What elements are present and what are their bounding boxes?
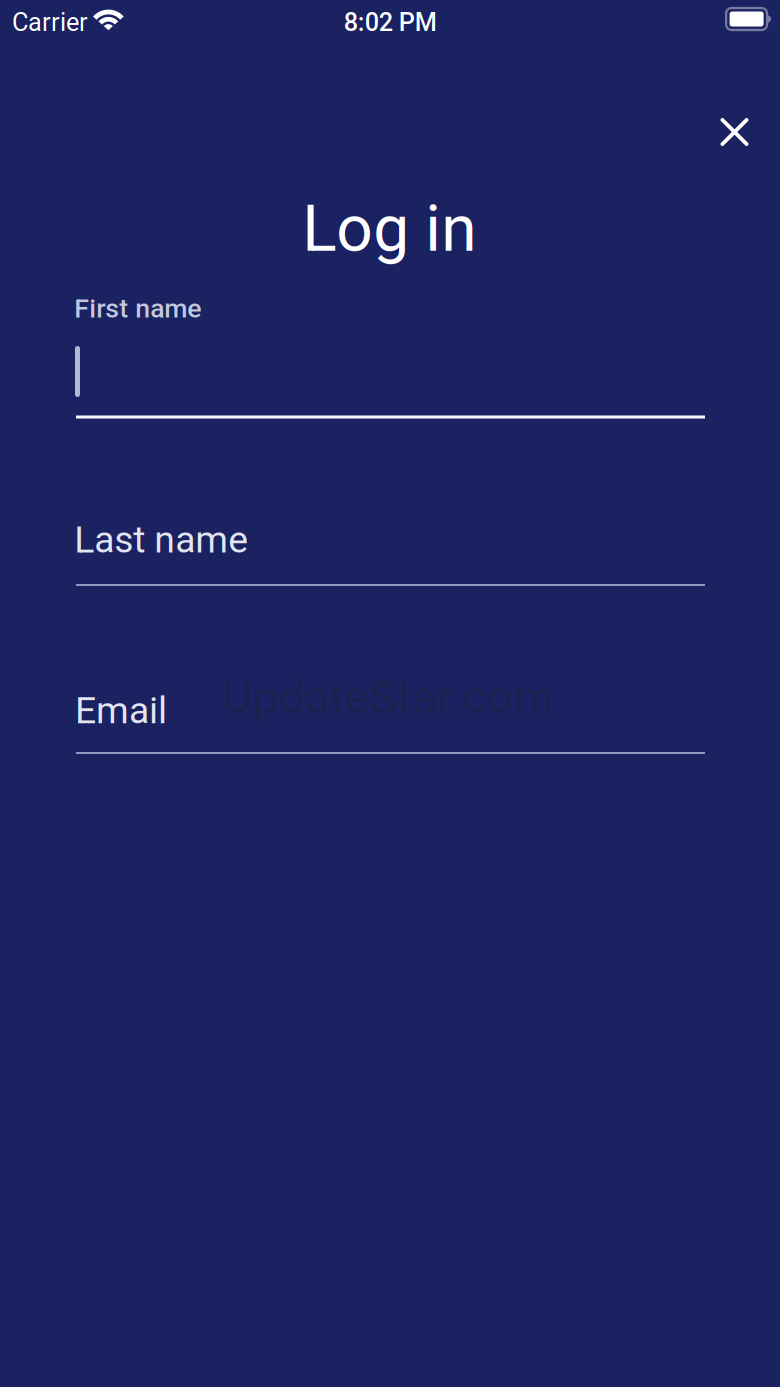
button[interactable]: Email [75,689,705,754]
staticText: First name [74,293,201,324]
staticText: 8:02 PM [344,7,437,37]
staticText: Carrier [12,8,88,37]
button[interactable]: Last name [74,518,705,587]
button[interactable]: First name [75,293,706,420]
staticText: Email [75,689,167,732]
staticText: Last name [74,518,248,561]
staticText: Log in [302,191,476,266]
button[interactable]: Close [701,99,767,165]
staticText: UpdateStar.com [222,670,554,725]
